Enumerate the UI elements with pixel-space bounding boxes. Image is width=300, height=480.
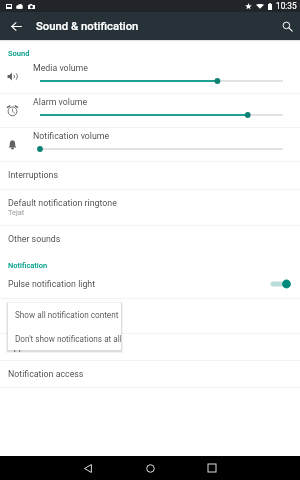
button[interactable]: When device is locked [0, 298, 300, 333]
staticText: Interruptions [8, 170, 58, 180]
staticText: 10:35 [276, 1, 297, 11]
staticText: When device is locked [8, 306, 95, 316]
staticText: Media volume [33, 63, 88, 73]
button[interactable]: Back [76, 456, 100, 480]
staticText: Notification [8, 261, 48, 270]
staticText: Notification volume [33, 131, 110, 141]
staticText: App notifications [8, 342, 75, 352]
button[interactable]: App notifications [0, 333, 300, 360]
button[interactable]: Don't show notifications at all [8, 327, 121, 350]
staticText: Show all notification content [8, 316, 102, 325]
button[interactable]: Recent apps [200, 456, 224, 480]
button[interactable]: Navigate up [2, 12, 30, 40]
staticText: Other sounds [8, 234, 61, 244]
button[interactable]: Alarm volume [0, 93, 300, 127]
button[interactable]: Media volume [0, 59, 300, 93]
staticText: Sound [8, 49, 30, 58]
staticText: Don't show notifications at all [15, 334, 121, 344]
staticText: Tejat [8, 208, 25, 217]
button[interactable]: Other sounds [0, 225, 300, 253]
button[interactable]: Search [272, 12, 300, 40]
button[interactable]: Notification access [0, 360, 300, 387]
button[interactable]: Pulse notification light [0, 270, 300, 298]
button[interactable]: Home [138, 456, 162, 480]
staticText: Pulse notification light [8, 279, 96, 289]
button[interactable]: Interruptions [0, 161, 300, 189]
button[interactable]: Default notification ringtone [0, 189, 300, 225]
staticText: Default notification ringtone [8, 198, 117, 208]
button[interactable]: Notification volume [0, 127, 300, 161]
staticText: Show all notification content [15, 310, 119, 320]
button[interactable]: Show all notification content [8, 303, 121, 327]
staticText: Notification access [8, 369, 84, 379]
staticText: Alarm volume [33, 97, 88, 107]
staticText: Sound & notification [36, 20, 139, 33]
